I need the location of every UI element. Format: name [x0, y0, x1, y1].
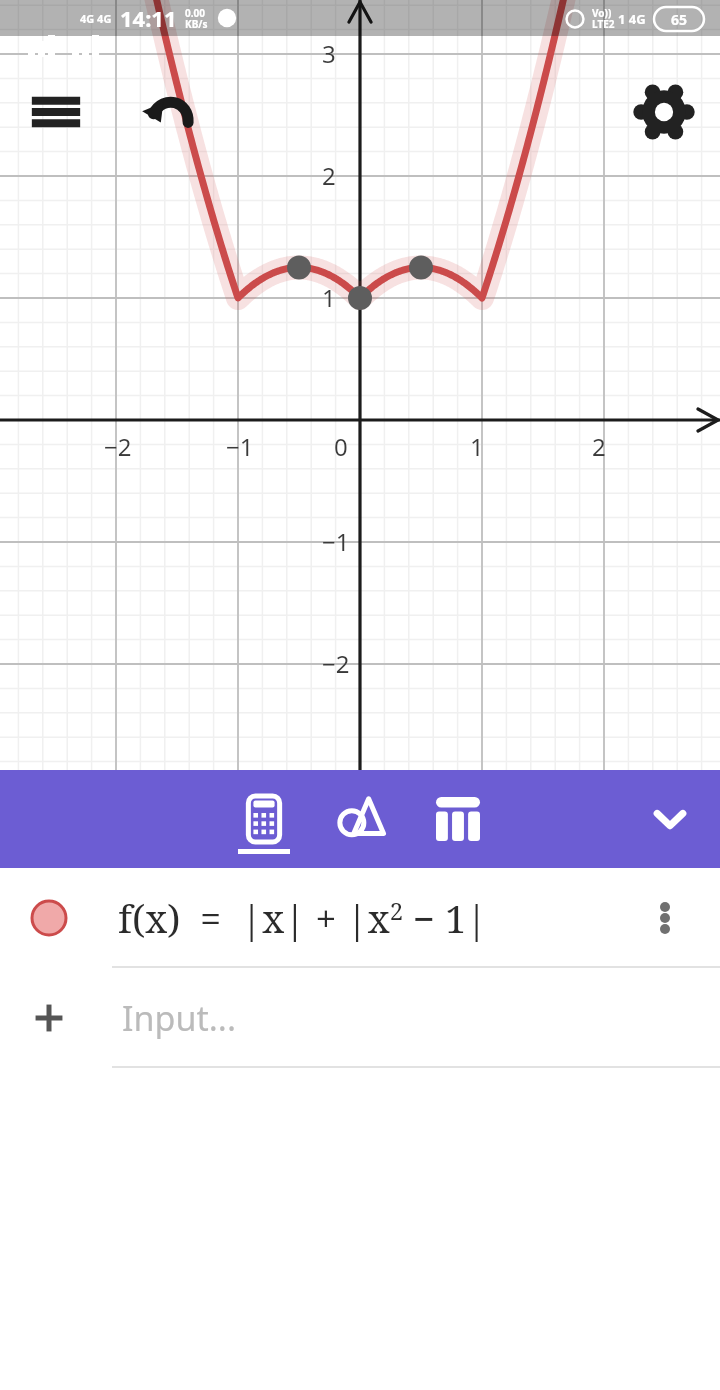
- button[interactable]: Undo: [136, 84, 198, 146]
- staticText: −2: [104, 430, 132, 463]
- staticText: 3: [322, 37, 336, 70]
- staticText: 2: [322, 159, 336, 192]
- button[interactable]: More options: [640, 893, 690, 943]
- staticText: 65: [671, 10, 688, 29]
- staticText: 1: [322, 281, 336, 314]
- staticText: −1: [226, 430, 254, 463]
- staticText: 0: [334, 430, 348, 463]
- staticText: 2: [592, 430, 606, 463]
- button[interactable]: Calculator: [226, 770, 302, 868]
- button[interactable]: f(x) = |x| + |x2 − 1|: [0, 868, 720, 968]
- staticText: f(x) = |x| + |x2 − 1|: [118, 892, 488, 944]
- staticText: 1: [470, 430, 484, 463]
- button[interactable]: Geometry: [322, 770, 398, 868]
- staticText: 14:11: [120, 3, 177, 33]
- button[interactable]: Input...: [0, 968, 720, 1068]
- staticText: 0.00 KB/s: [185, 6, 208, 31]
- staticText: −1: [322, 525, 350, 558]
- staticText: 1 4G: [618, 10, 646, 28]
- button[interactable]: Settings: [632, 80, 696, 144]
- staticText: −2: [322, 647, 350, 680]
- staticText: 4G 4G: [80, 11, 112, 26]
- staticText: Vo)) LTE2: [592, 6, 615, 31]
- button[interactable]: Menu: [28, 84, 84, 140]
- button[interactable]: Table: [420, 770, 496, 868]
- staticText: Input...: [122, 995, 237, 1041]
- button[interactable]: Collapse: [642, 791, 698, 847]
